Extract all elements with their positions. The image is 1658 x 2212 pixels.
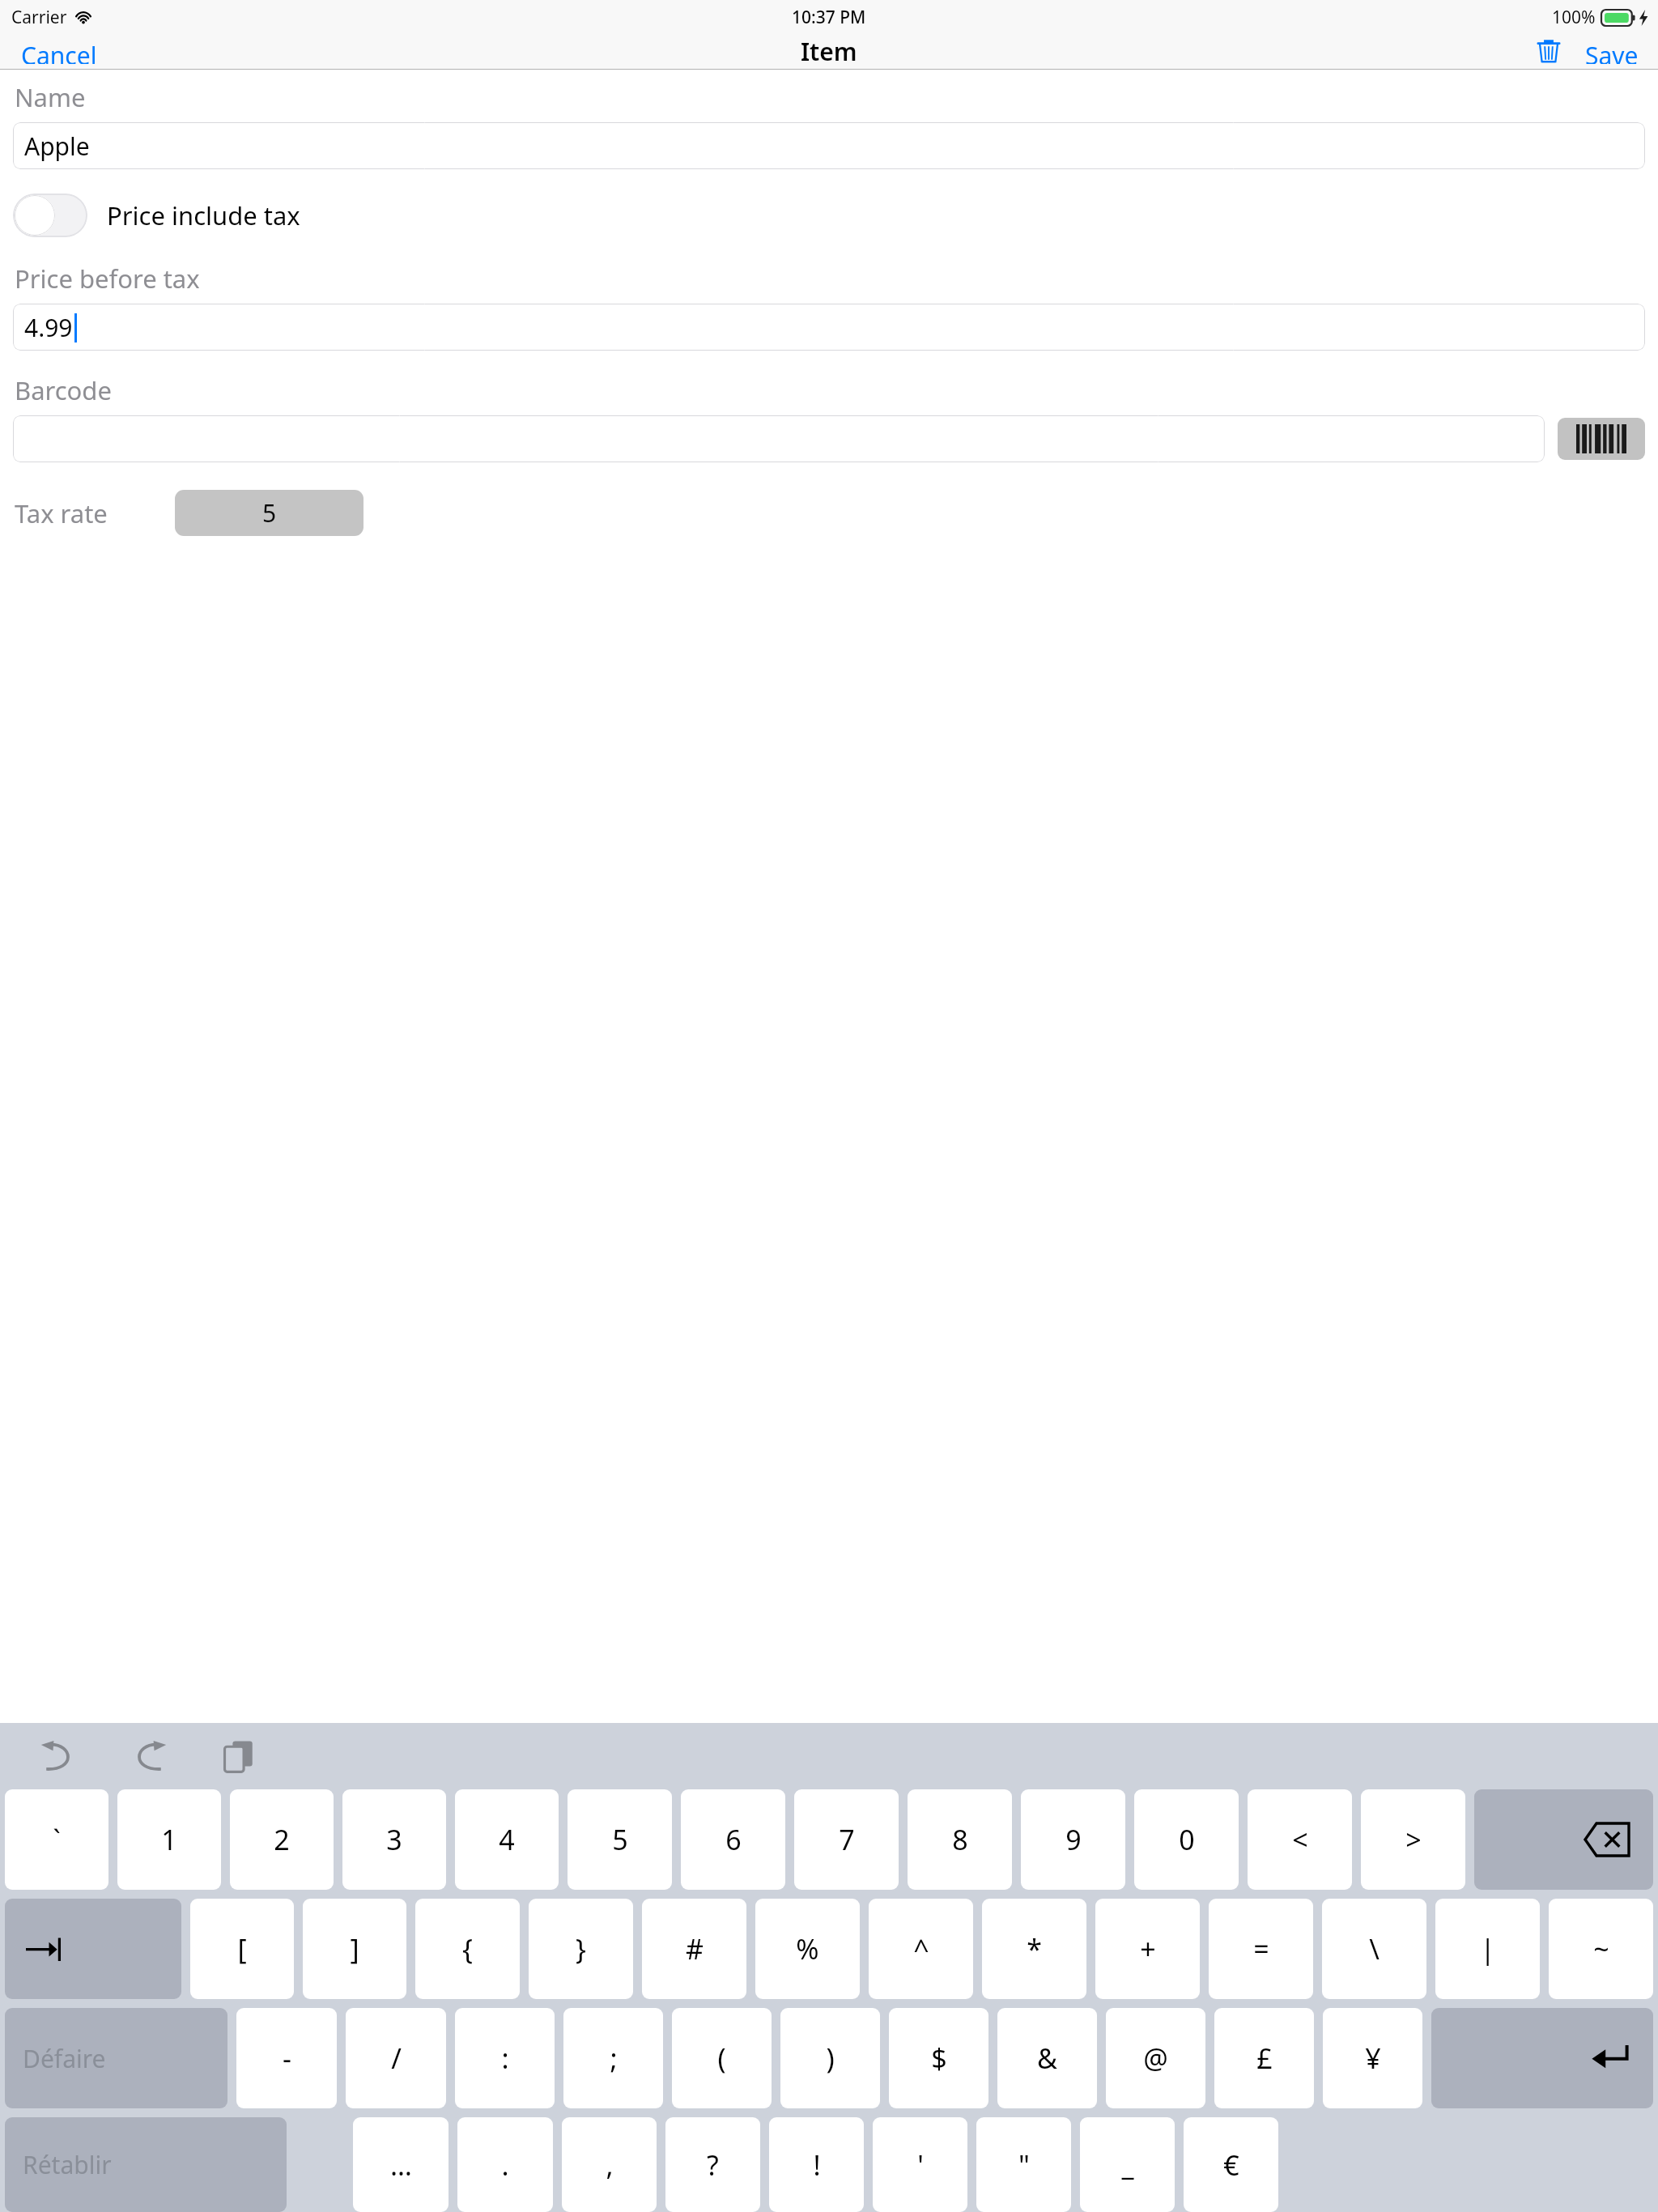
staticText: 5 [612, 1821, 628, 1858]
button[interactable]: 3 [342, 1789, 446, 1890]
button[interactable]: £ [1214, 2008, 1314, 2108]
staticText: Rétablir [23, 2148, 112, 2181]
staticText: € [1223, 2146, 1239, 2184]
staticText: . [501, 2146, 509, 2184]
button[interactable]: | [1435, 1899, 1540, 1999]
button[interactable]: Redo [125, 1734, 175, 1778]
button[interactable]: > [1361, 1789, 1465, 1890]
staticText: " [1018, 2146, 1030, 2184]
staticText: @ [1143, 2040, 1168, 2077]
staticText: Cancel [21, 39, 97, 64]
button[interactable]: Scan barcode [1558, 418, 1645, 460]
staticText: 9 [1065, 1821, 1082, 1858]
button[interactable]: ] [303, 1899, 406, 1999]
button[interactable]: : [455, 2008, 555, 2108]
staticText: % [796, 1930, 819, 1967]
button[interactable]: Backspace [1474, 1789, 1653, 1890]
button[interactable]: Tab [5, 1899, 181, 1999]
button[interactable]: # [642, 1899, 746, 1999]
button[interactable]: , [562, 2117, 657, 2212]
staticText: { [462, 1930, 473, 1967]
staticText: | [1480, 1930, 1495, 1967]
button[interactable]: Undo [32, 1734, 83, 1778]
staticText: ¥ [1365, 2040, 1381, 2077]
button[interactable]: 2 [230, 1789, 334, 1890]
button[interactable]: 8 [908, 1789, 1012, 1890]
button[interactable]: 9 [1021, 1789, 1125, 1890]
button[interactable]: 4 [455, 1789, 559, 1890]
button[interactable]: ^ [869, 1899, 973, 1999]
staticText: * [1027, 1930, 1042, 1967]
staticText: Barcode [15, 373, 112, 407]
staticText: ! [813, 2146, 821, 2184]
button[interactable]: & [997, 2008, 1097, 2108]
staticText: 2 [274, 1821, 290, 1858]
button[interactable]: Return [1431, 2008, 1653, 2108]
button[interactable]: - [236, 2008, 337, 2108]
button[interactable]: $ [889, 2008, 988, 2108]
button[interactable]: ( [672, 2008, 772, 2108]
staticText: _ [1121, 2146, 1134, 2184]
button[interactable]: ! [769, 2117, 864, 2212]
button[interactable]: { [415, 1899, 520, 1999]
button[interactable]: / [346, 2008, 446, 2108]
button[interactable]: 5 [568, 1789, 672, 1890]
button[interactable]: Rétablir [5, 2117, 287, 2212]
button[interactable]: . [457, 2117, 553, 2212]
staticText: \ [1369, 1930, 1380, 1967]
button[interactable]: 0 [1134, 1789, 1239, 1890]
staticText: Carrier [11, 6, 67, 29]
button[interactable]: Cancel [11, 34, 107, 69]
staticText: - [283, 2040, 291, 2077]
button[interactable]: Save [1579, 34, 1645, 69]
button[interactable]: ¥ [1323, 2008, 1422, 2108]
button[interactable]: = [1209, 1899, 1313, 1999]
staticText: 4 [499, 1821, 515, 1858]
staticText: ( [717, 2040, 726, 2077]
staticText: 100% [1552, 6, 1596, 29]
button[interactable]: … [353, 2117, 449, 2212]
button[interactable]: Paste [217, 1733, 261, 1780]
staticText: , [606, 2146, 614, 2184]
staticText: ~ [1593, 1930, 1609, 1967]
button[interactable]: 5 [175, 490, 363, 536]
staticText: Apple [24, 130, 90, 163]
button[interactable]: } [529, 1899, 633, 1999]
button[interactable]: @ [1106, 2008, 1205, 2108]
button[interactable]: Delete [1530, 34, 1567, 69]
button[interactable] [13, 415, 1545, 462]
staticText: ] [350, 1930, 359, 1967]
staticText: ? [707, 2146, 719, 2184]
button[interactable]: _ [1080, 2117, 1175, 2212]
button[interactable]: Price include tax [13, 194, 300, 237]
staticText: £ [1256, 2040, 1273, 2077]
button[interactable]: 6 [681, 1789, 785, 1890]
button[interactable]: * [982, 1899, 1086, 1999]
button[interactable]: 4.99 [13, 304, 1645, 351]
button[interactable]: Apple [13, 122, 1645, 169]
button[interactable]: ` [5, 1789, 108, 1890]
button[interactable]: ? [665, 2117, 760, 2212]
staticText: ; [610, 2040, 618, 2077]
button[interactable]: " [976, 2117, 1071, 2212]
staticText: 1 [161, 1821, 177, 1858]
staticText: ^ [913, 1930, 929, 1967]
button[interactable]: + [1095, 1899, 1200, 1999]
button[interactable]: \ [1322, 1899, 1426, 1999]
button[interactable]: ~ [1549, 1899, 1653, 1999]
staticText: & [1037, 2040, 1057, 2077]
button[interactable]: € [1184, 2117, 1278, 2212]
staticText: < [1292, 1821, 1308, 1858]
button[interactable]: ' [873, 2117, 967, 2212]
button[interactable]: Défaire [5, 2008, 227, 2108]
button[interactable]: 1 [117, 1789, 221, 1890]
button[interactable]: [ [190, 1899, 294, 1999]
button[interactable]: % [755, 1899, 860, 1999]
button[interactable]: ; [563, 2008, 663, 2108]
button[interactable]: ) [780, 2008, 880, 2108]
staticText: : [501, 2040, 509, 2077]
button[interactable]: < [1248, 1789, 1352, 1890]
staticText: 8 [952, 1821, 968, 1858]
staticText: } [576, 1930, 586, 1967]
button[interactable]: 7 [794, 1789, 899, 1890]
